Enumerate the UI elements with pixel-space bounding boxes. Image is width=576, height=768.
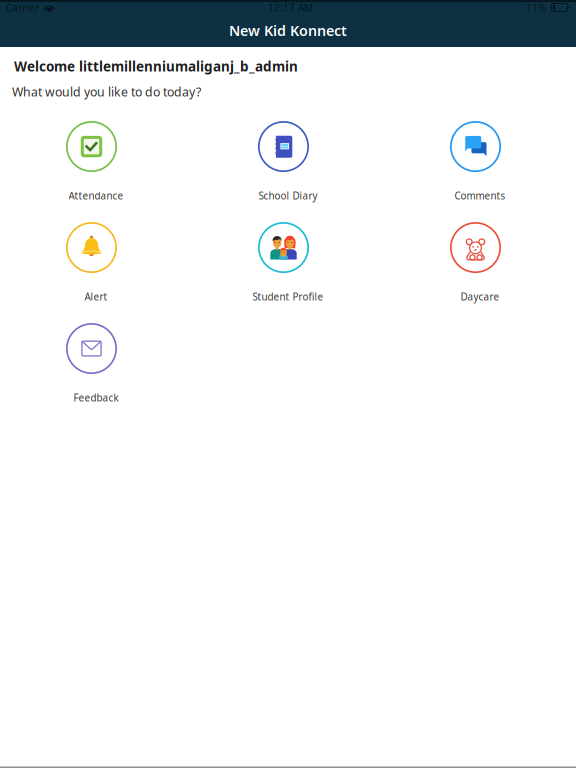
button[interactable]: Alert (0, 222, 192, 323)
staticText: Daycare (460, 290, 499, 303)
button[interactable]: Feedback (0, 323, 192, 424)
staticText: Alert (84, 290, 107, 303)
staticText: Carrier (6, 1, 39, 14)
staticText: 11% (526, 1, 546, 14)
staticText: Feedback (73, 391, 118, 404)
button[interactable]: Daycare (384, 222, 576, 323)
button[interactable]: Student Profile (192, 222, 384, 323)
button[interactable]: Attendance (0, 121, 192, 222)
button[interactable]: School Diary (192, 121, 384, 222)
staticText: New Kid Konnect (229, 21, 347, 40)
staticText: What would you like to do today? (12, 83, 201, 100)
staticText: Welcome littlemillenniumaliganj_b_admin (14, 57, 298, 75)
button[interactable]: Comments (384, 121, 576, 222)
staticText: Comments (454, 189, 505, 202)
staticText: 12:17 AM (268, 1, 313, 14)
staticText: Attendance (68, 189, 123, 202)
staticText: School Diary (258, 189, 317, 202)
staticText: Student Profile (252, 290, 323, 303)
